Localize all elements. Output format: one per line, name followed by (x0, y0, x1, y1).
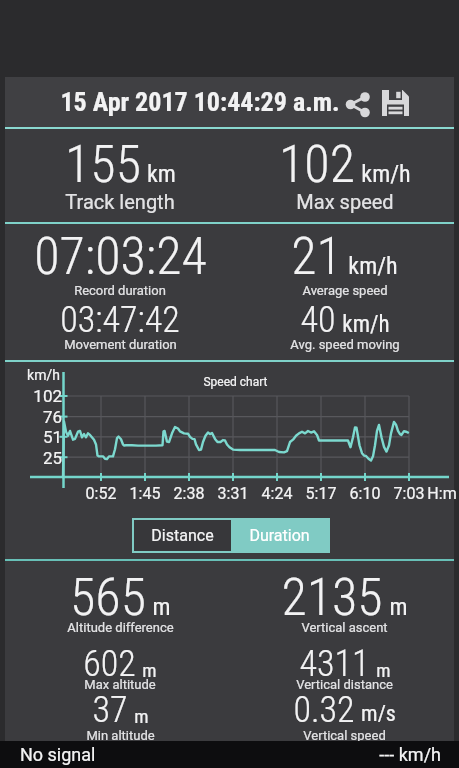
staticText: 2135 (281, 567, 383, 628)
staticText: 51 (22, 427, 62, 447)
staticText: km (147, 160, 176, 188)
staticText: Vertical ascent (301, 620, 388, 635)
staticText: Min altitude (86, 728, 155, 743)
staticText: Average speed (302, 283, 388, 298)
staticText: Distance (151, 526, 214, 545)
staticText: 6:10 (343, 484, 387, 503)
staticText: Duration (249, 526, 310, 545)
staticText: 03:47:42 (60, 299, 180, 341)
staticText: m (376, 659, 391, 681)
staticText: km/h (348, 252, 398, 280)
button[interactable] (381, 89, 410, 118)
staticText: 155 (65, 134, 141, 195)
button[interactable]: Duration (231, 520, 328, 551)
staticText: Altitude difference (67, 620, 174, 635)
staticText: --- km/h (379, 744, 441, 765)
staticText: m/s (361, 701, 396, 727)
staticText: 37 (92, 689, 128, 731)
staticText: 1:45 (123, 484, 167, 503)
staticText: m (389, 593, 408, 621)
staticText: 25 (22, 448, 62, 468)
staticText: km/h (361, 160, 411, 188)
staticText: 4:24 (255, 484, 299, 503)
staticText: Avg. speed moving (290, 337, 400, 352)
staticText: 0:52 (79, 484, 123, 503)
staticText: 07:03:24 (34, 226, 207, 287)
staticText: m (134, 705, 149, 727)
staticText: 0.32 (293, 689, 355, 731)
staticText: Max altitude (84, 677, 156, 692)
staticText: No signal (20, 744, 96, 765)
staticText: 3:31 (211, 484, 255, 503)
staticText: m (152, 593, 171, 621)
staticText: 2:38 (167, 484, 211, 503)
staticText: Vertical speed (303, 728, 386, 743)
staticText: Max speed (296, 190, 394, 213)
staticText: 5:17 (299, 484, 343, 503)
staticText: 102 (279, 134, 355, 195)
staticText: 4311 (299, 643, 370, 685)
staticText: 602 (83, 643, 136, 685)
staticText: Vertical distance (296, 677, 393, 692)
staticText: H:m (420, 484, 459, 503)
staticText: 21 (291, 226, 342, 287)
staticText: km/h (27, 367, 60, 383)
staticText: m (142, 659, 157, 681)
staticText: Speed chart (203, 375, 268, 389)
button[interactable] (345, 91, 372, 118)
staticText: 40 (300, 299, 336, 341)
staticText: 7:03 (387, 484, 431, 503)
staticText: 565 (70, 567, 146, 628)
button[interactable]: Distance (134, 520, 231, 551)
staticText: 15 Apr 2017 10:44:29 a.m. (60, 87, 340, 117)
staticText: 76 (22, 407, 62, 427)
staticText: Record duration (74, 283, 166, 298)
staticText: km/h (342, 311, 390, 338)
staticText: 102 (22, 386, 62, 406)
staticText: Movement duration (64, 337, 177, 352)
staticText: Track length (65, 190, 175, 213)
